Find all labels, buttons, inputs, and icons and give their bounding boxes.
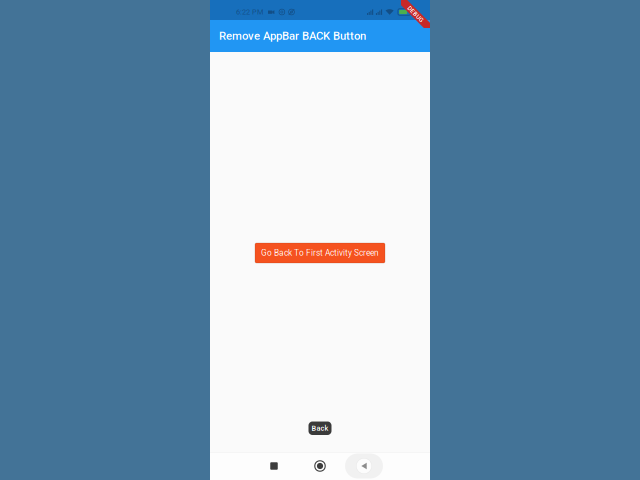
staticText: 6:22 PM bbox=[236, 8, 263, 16]
button[interactable]: Back bbox=[345, 452, 383, 480]
button[interactable]: Back bbox=[308, 421, 331, 435]
button[interactable]: Go Back To First Activity Screen bbox=[255, 243, 385, 263]
button[interactable]: Home bbox=[303, 452, 337, 480]
staticText: Back bbox=[311, 424, 328, 433]
staticText: Go Back To First Activity Screen bbox=[261, 248, 379, 258]
button[interactable]: Recent apps bbox=[257, 452, 291, 480]
staticText: Remove AppBar BACK Button bbox=[219, 29, 366, 43]
staticText: DEBUG bbox=[405, 10, 425, 18]
